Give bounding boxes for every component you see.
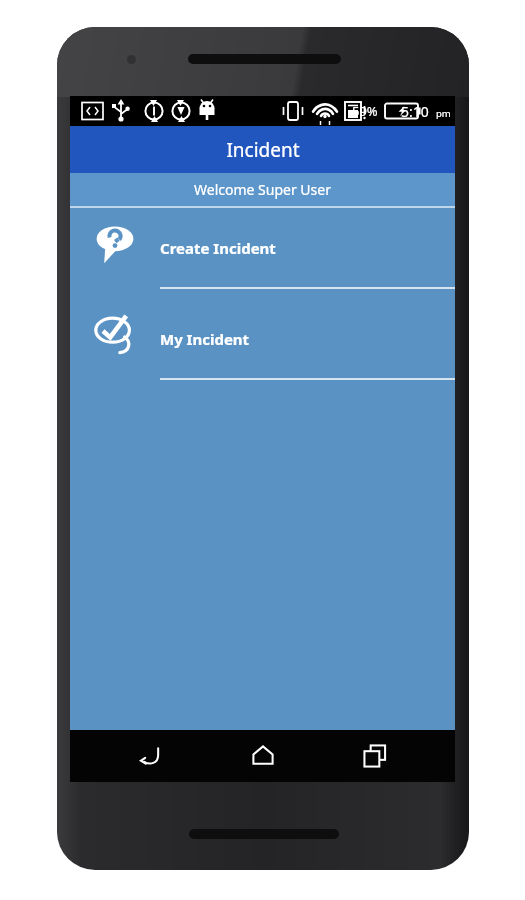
staticText: Welcome Super User — [194, 180, 331, 199]
button[interactable]: Back — [118, 730, 182, 782]
staticText: 5:10 — [401, 102, 429, 121]
staticText: Create Incident — [160, 238, 276, 258]
staticText: Incident — [226, 137, 300, 163]
button[interactable]: Recent apps — [343, 730, 407, 782]
button[interactable]: Create Incident — [70, 208, 455, 299]
button[interactable]: My Incident — [70, 299, 455, 390]
button[interactable]: Home — [231, 730, 295, 782]
staticText: pm — [436, 107, 451, 120]
staticText: 59% — [352, 102, 378, 120]
staticText: My Incident — [160, 329, 250, 349]
